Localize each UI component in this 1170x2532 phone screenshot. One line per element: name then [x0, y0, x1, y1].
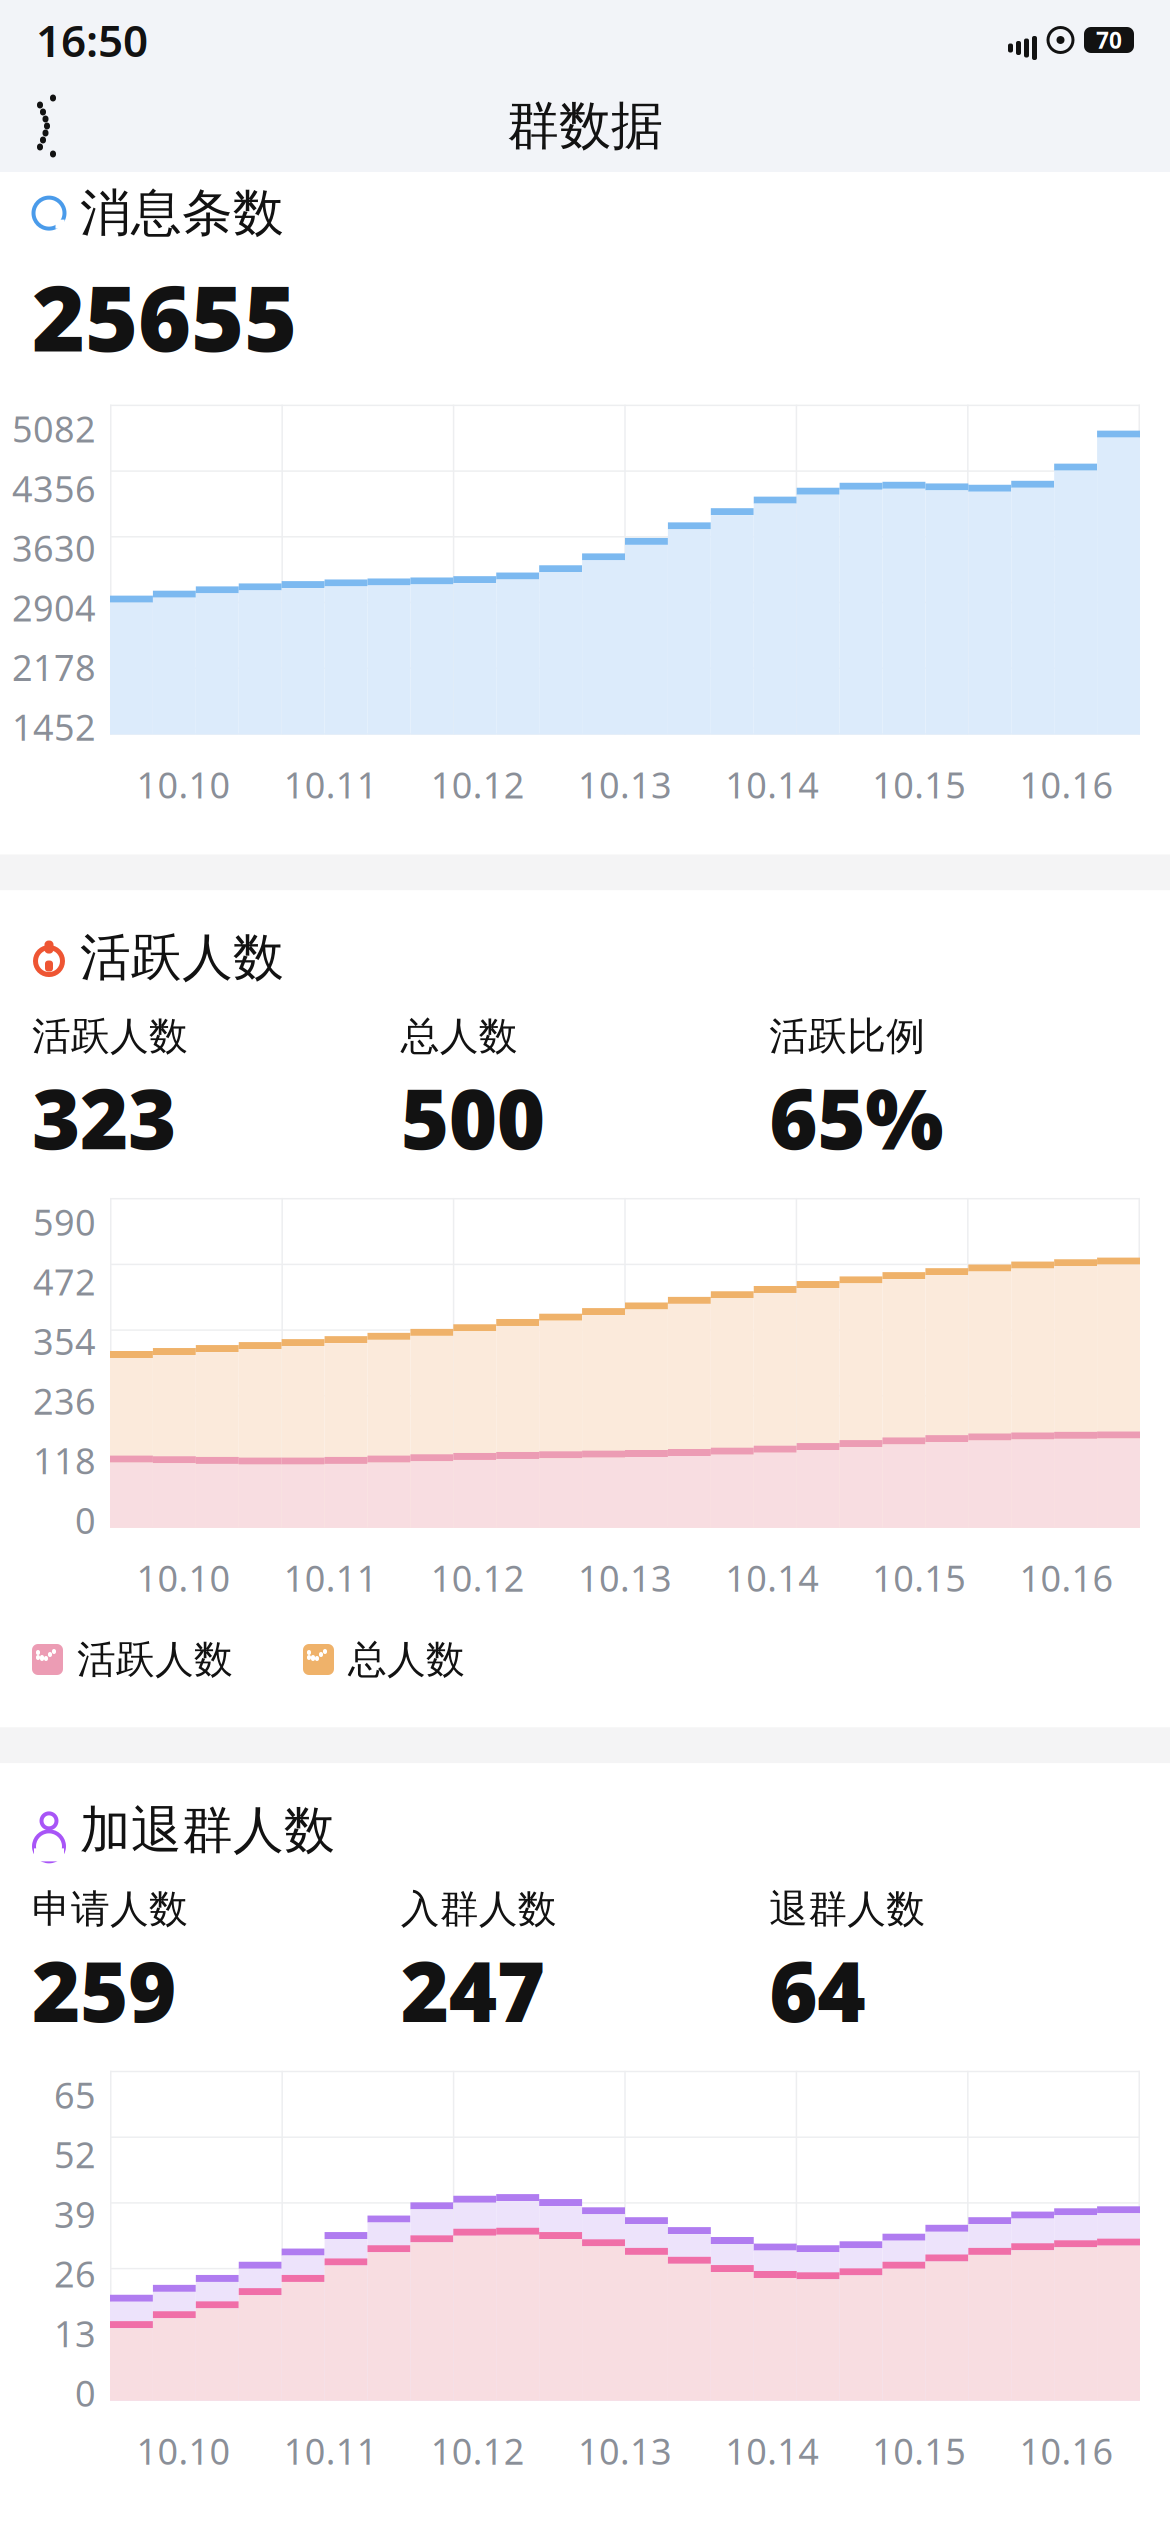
staticText: 加退群人数: [80, 1799, 335, 1861]
staticText: 群数据: [507, 94, 663, 158]
staticText: 总人数: [401, 1013, 518, 1060]
staticText: 10.14: [725, 2427, 819, 2475]
staticText: 10.12: [431, 2427, 525, 2475]
staticText: 10.11: [284, 2427, 378, 2475]
staticText: 活跃人数: [32, 1013, 188, 1060]
staticText: 5082: [12, 405, 96, 452]
staticText: 10.15: [872, 761, 966, 808]
staticText: 10.15: [872, 1554, 966, 1602]
staticText: 10.10: [137, 1554, 231, 1602]
staticText: 活跃比例: [769, 1013, 925, 1060]
staticText: 总人数: [348, 1636, 465, 1683]
staticText: 354: [33, 1317, 96, 1365]
staticText: 39: [54, 2190, 96, 2238]
staticText: 10.16: [1019, 1554, 1113, 1602]
staticText: 10.14: [725, 761, 819, 808]
staticText: 10.10: [137, 2427, 231, 2475]
staticText: 0: [75, 1496, 96, 1544]
staticText: 退群人数: [769, 1885, 925, 1933]
staticText: 10.12: [431, 761, 525, 808]
staticText: 入群人数: [401, 1885, 557, 1933]
staticText: 259: [32, 1935, 176, 2045]
staticText: 10.11: [284, 761, 378, 808]
staticText: 472: [33, 1258, 96, 1305]
staticText: 活跃人数: [80, 926, 284, 989]
staticText: 10.13: [578, 2427, 672, 2475]
staticText: 64: [769, 1935, 865, 2045]
staticText: 10.15: [872, 2427, 966, 2475]
staticText: 10.10: [137, 761, 231, 808]
staticText: 323: [32, 1062, 176, 1172]
staticText: 65: [54, 2071, 96, 2119]
staticText: 0: [75, 2369, 96, 2417]
staticText: 2904: [12, 584, 96, 631]
staticText: 10.11: [284, 1554, 378, 1602]
staticText: 70: [1096, 25, 1122, 55]
staticText: 10.16: [1019, 2427, 1113, 2475]
staticText: 590: [33, 1198, 96, 1246]
button[interactable]: 返回: [0, 82, 90, 170]
staticText: 2178: [12, 643, 96, 691]
staticText: 26: [54, 2250, 96, 2297]
staticText: 10.16: [1019, 761, 1113, 808]
staticText: 52: [54, 2130, 96, 2178]
staticText: 10.12: [431, 1554, 525, 1602]
staticText: 13: [54, 2309, 96, 2357]
staticText: 活跃人数: [77, 1636, 233, 1683]
staticText: 118: [33, 1436, 96, 1484]
staticText: 65%: [769, 1062, 943, 1172]
staticText: 10.14: [725, 1554, 819, 1602]
staticText: 3630: [12, 524, 96, 572]
staticText: 500: [401, 1062, 545, 1172]
staticText: 消息条数: [80, 182, 284, 244]
staticText: 申请人数: [32, 1885, 188, 1933]
staticText: 4356: [12, 464, 96, 512]
staticText: 16:50: [36, 11, 148, 69]
staticText: 10.13: [578, 761, 672, 808]
button[interactable]: 总人数: [303, 1636, 465, 1683]
button[interactable]: 活跃人数: [32, 1636, 233, 1683]
staticText: 10.13: [578, 1554, 672, 1602]
staticText: 25655: [32, 256, 297, 377]
staticText: 236: [33, 1377, 96, 1425]
staticText: 247: [401, 1935, 545, 2045]
staticText: 1452: [12, 703, 96, 751]
